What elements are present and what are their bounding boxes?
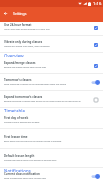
staticText: Overview <box>4 53 24 57</box>
button[interactable]: Current class notification <box>0 172 103 180</box>
staticText: 1:16 <box>93 1 102 7</box>
staticText: Expand tomorrow's classes <box>4 95 43 99</box>
staticText: Current class notification <box>4 172 40 176</box>
button[interactable]: Vibrate only during classes <box>0 36 103 52</box>
staticText: Vibrate only during classes <box>4 40 43 44</box>
staticText: Vibrate only during class times, silent … <box>4 45 50 48</box>
staticText: Choose how long a lesson is by default i… <box>4 159 57 162</box>
staticText: First day of week <box>4 116 29 120</box>
button[interactable]: Tomorrow's classes <box>0 74 103 90</box>
staticText: Choose the first working day of week <box>4 121 40 124</box>
button[interactable]: Use 24-hour format <box>0 22 103 35</box>
button[interactable]: Navigate up <box>0 7 10 19</box>
staticText: Expand and merge classes upon arrival no… <box>4 66 46 69</box>
staticText: Expand tomorrow's classes upon arrival o… <box>4 100 81 103</box>
button[interactable]: Toggle setting <box>89 77 101 88</box>
button[interactable]: Default lesson length <box>0 149 103 167</box>
staticText: Notifications <box>4 168 31 172</box>
button[interactable]: Toggle setting <box>90 22 101 33</box>
staticText: Expand/merge classes <box>4 61 36 65</box>
staticText: Timetable <box>4 108 25 112</box>
staticText: Enter when your day starts in the format… <box>4 140 62 143</box>
staticText: Show tomorrow's classes on the overview … <box>4 83 66 86</box>
staticText: Settings <box>13 11 27 16</box>
button[interactable]: Toggle setting <box>90 60 101 71</box>
staticText: Tomorrow's classes <box>4 78 32 82</box>
button[interactable]: First day of week <box>0 112 103 128</box>
staticText: Default lesson length <box>4 154 35 158</box>
button[interactable]: Toggle setting <box>90 39 101 50</box>
button[interactable]: Toggle setting <box>90 94 101 105</box>
button[interactable]: Toggle setting <box>89 172 101 180</box>
button[interactable]: First lesson time <box>0 129 103 148</box>
button[interactable]: Expand/merge classes <box>0 57 103 73</box>
staticText: First lesson time <box>4 135 28 139</box>
staticText: Use 24-hour format <box>4 23 32 27</box>
button[interactable]: Expand tomorrow's classes <box>0 91 103 107</box>
staticText: Show a notification about your current c… <box>4 177 47 180</box>
staticText: Use 24 hour time format instead of 12 ho… <box>4 28 50 31</box>
